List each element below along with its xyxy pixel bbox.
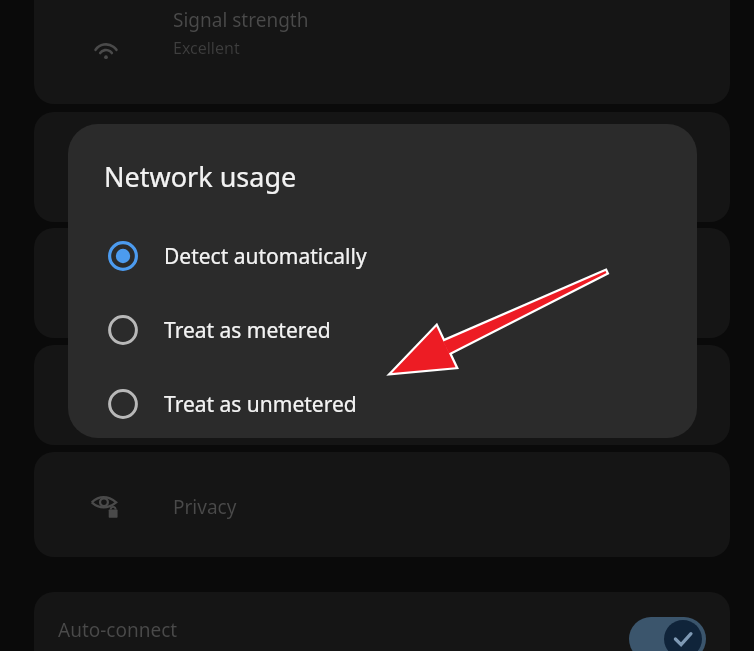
staticText: Detect automatically (164, 242, 367, 271)
staticText: Network usage (104, 158, 297, 195)
button[interactable]: Detect automatically (68, 219, 697, 293)
staticText: Signal strength (173, 7, 309, 33)
button[interactable]: Treat as unmetered (68, 367, 697, 438)
button[interactable] (34, 228, 730, 338)
button[interactable]: Signal strength (34, 0, 730, 104)
button[interactable]: Auto-connect toggle (629, 617, 706, 651)
button[interactable] (34, 112, 730, 222)
staticText: Treat as metered (164, 316, 331, 345)
button[interactable]: Auto-connect (34, 592, 730, 651)
staticText: Treat as unmetered (164, 390, 357, 419)
staticText: Excellent (173, 37, 240, 59)
staticText: Auto-connect (58, 617, 178, 643)
button[interactable]: Privacy (34, 452, 730, 557)
button[interactable]: Treat as metered (68, 293, 697, 367)
button[interactable] (34, 345, 730, 445)
staticText: Privacy (173, 494, 237, 520)
